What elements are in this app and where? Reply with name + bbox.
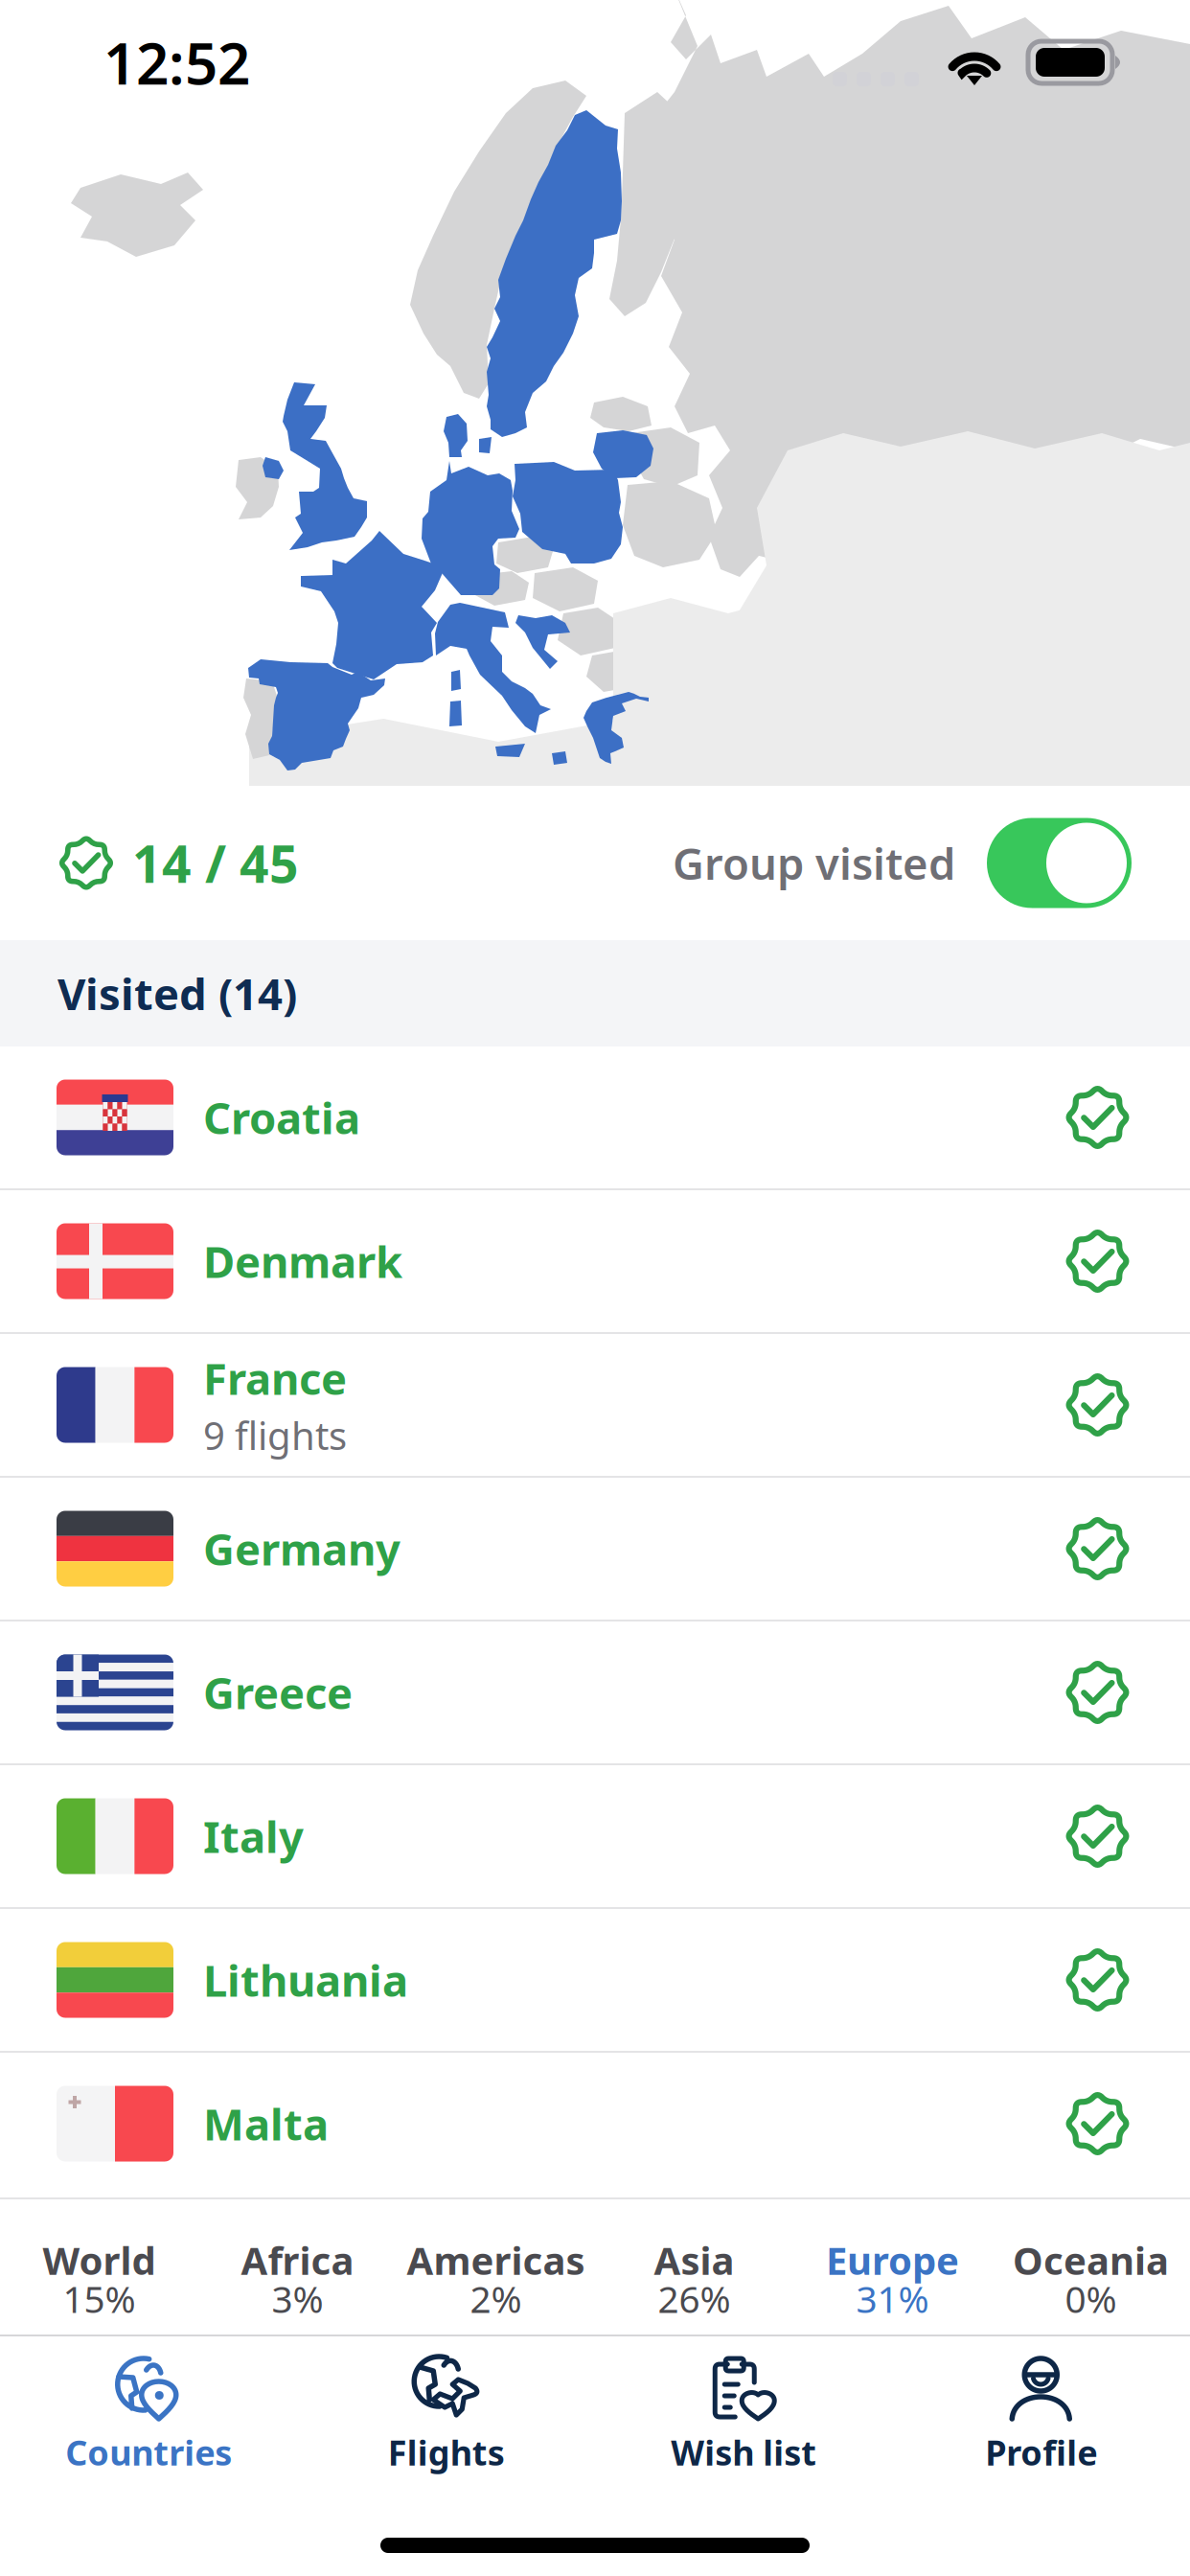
button[interactable]: Oceania bbox=[992, 2199, 1190, 2334]
button[interactable]: Wish list bbox=[595, 2336, 892, 2576]
button[interactable]: World bbox=[0, 2199, 198, 2334]
staticText: Africa bbox=[241, 2235, 354, 2286]
button[interactable]: Germany bbox=[0, 1478, 1190, 1620]
staticText: 26% bbox=[658, 2274, 731, 2323]
staticText: 3% bbox=[272, 2274, 323, 2323]
button[interactable]: Flights bbox=[297, 2336, 595, 2576]
button[interactable]: Greece bbox=[0, 1621, 1190, 1763]
staticText: World bbox=[43, 2235, 156, 2286]
staticText: Wish list bbox=[671, 2429, 817, 2475]
staticText: Malta bbox=[203, 2095, 329, 2153]
staticText: 0% bbox=[1065, 2274, 1117, 2323]
staticText: Croatia bbox=[203, 1089, 360, 1146]
staticText: 31% bbox=[856, 2274, 929, 2323]
button[interactable]: Italy bbox=[0, 1765, 1190, 1907]
staticText: 9 flights bbox=[203, 1410, 347, 1461]
staticText: Oceania bbox=[1013, 2235, 1169, 2286]
button[interactable]: Denmark bbox=[0, 1190, 1190, 1332]
staticText: Europe bbox=[826, 2235, 959, 2286]
staticText: Countries bbox=[65, 2429, 232, 2475]
button[interactable]: Profile bbox=[892, 2336, 1190, 2576]
button[interactable]: Croatia bbox=[0, 1046, 1190, 1188]
button[interactable]: Malta bbox=[0, 2053, 1190, 2195]
button[interactable]: France bbox=[0, 1334, 1190, 1476]
staticText: Greece bbox=[203, 1664, 353, 1721]
staticText: 2% bbox=[470, 2274, 522, 2323]
button[interactable]: Europe bbox=[793, 2199, 992, 2334]
staticText: Lithuania bbox=[203, 1951, 408, 2009]
button[interactable] bbox=[987, 818, 1132, 908]
staticText: Denmark bbox=[203, 1232, 402, 1290]
staticText: Profile bbox=[985, 2429, 1097, 2475]
staticText: Italy bbox=[203, 1807, 304, 1865]
button[interactable]: Countries bbox=[0, 2336, 297, 2576]
staticText: Visited (14) bbox=[57, 964, 297, 1022]
staticText: 15% bbox=[63, 2274, 136, 2323]
button[interactable]: Africa bbox=[198, 2199, 397, 2334]
staticText: Group visited bbox=[673, 834, 955, 892]
staticText: Flights bbox=[388, 2429, 505, 2475]
staticText: Americas bbox=[407, 2235, 585, 2286]
button[interactable]: Lithuania bbox=[0, 1909, 1190, 2051]
button[interactable]: Asia bbox=[595, 2199, 793, 2334]
button[interactable]: Americas bbox=[397, 2199, 595, 2334]
staticText: Asia bbox=[654, 2235, 734, 2286]
staticText: Germany bbox=[203, 1520, 400, 1578]
staticText: 12:52 bbox=[103, 24, 250, 101]
staticText: France bbox=[203, 1349, 347, 1407]
staticText: 14 / 45 bbox=[132, 829, 299, 897]
